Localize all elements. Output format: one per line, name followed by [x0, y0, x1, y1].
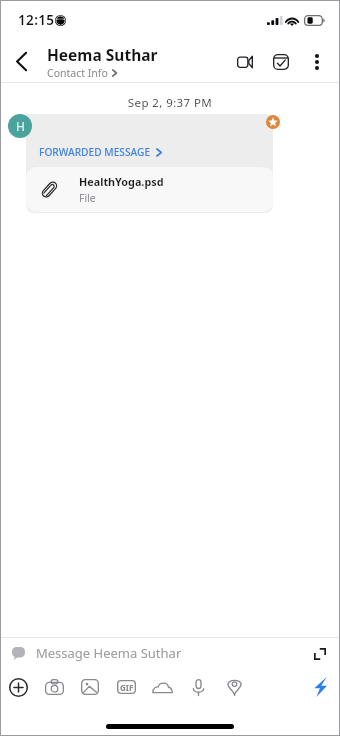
staticText: Sep 2, 9:37 PM [0, 95, 340, 111]
button[interactable]: Camera [36, 669, 72, 705]
button[interactable]: More options [299, 42, 334, 82]
staticText: Message Heema Suthar [36, 644, 182, 662]
staticText: HealthYoga.psd [79, 174, 164, 189]
button[interactable]: H [8, 114, 32, 138]
button[interactable]: Gallery [72, 669, 108, 705]
staticText: FORWARDED MESSAGE [39, 145, 151, 159]
button[interactable]: Cloud [144, 669, 180, 705]
button[interactable]: Microphone [180, 669, 216, 705]
button[interactable]: Video call [227, 42, 263, 82]
button[interactable]: HealthYoga.psd [26, 167, 273, 212]
staticText: Contact Info [47, 66, 108, 80]
staticText: GIF [120, 682, 134, 693]
button[interactable]: Heema Suthar [47, 44, 227, 80]
staticText: File [79, 191, 96, 205]
button[interactable]: Message Heema Suthar [0, 638, 340, 668]
staticText: H [16, 118, 25, 134]
staticText: Heema Suthar [47, 44, 158, 65]
button[interactable]: Tasks [263, 42, 299, 82]
button[interactable]: Quick action [304, 671, 336, 703]
button[interactable]: Add [0, 669, 36, 705]
button[interactable]: Expand [305, 640, 335, 668]
button[interactable]: Back [0, 41, 42, 82]
button[interactable]: GIF [108, 669, 144, 705]
button[interactable]: FORWARDED MESSAGE [26, 114, 273, 213]
button[interactable]: Starred [266, 115, 280, 129]
button[interactable]: Location [216, 669, 252, 705]
staticText: 12:15 [18, 11, 55, 29]
